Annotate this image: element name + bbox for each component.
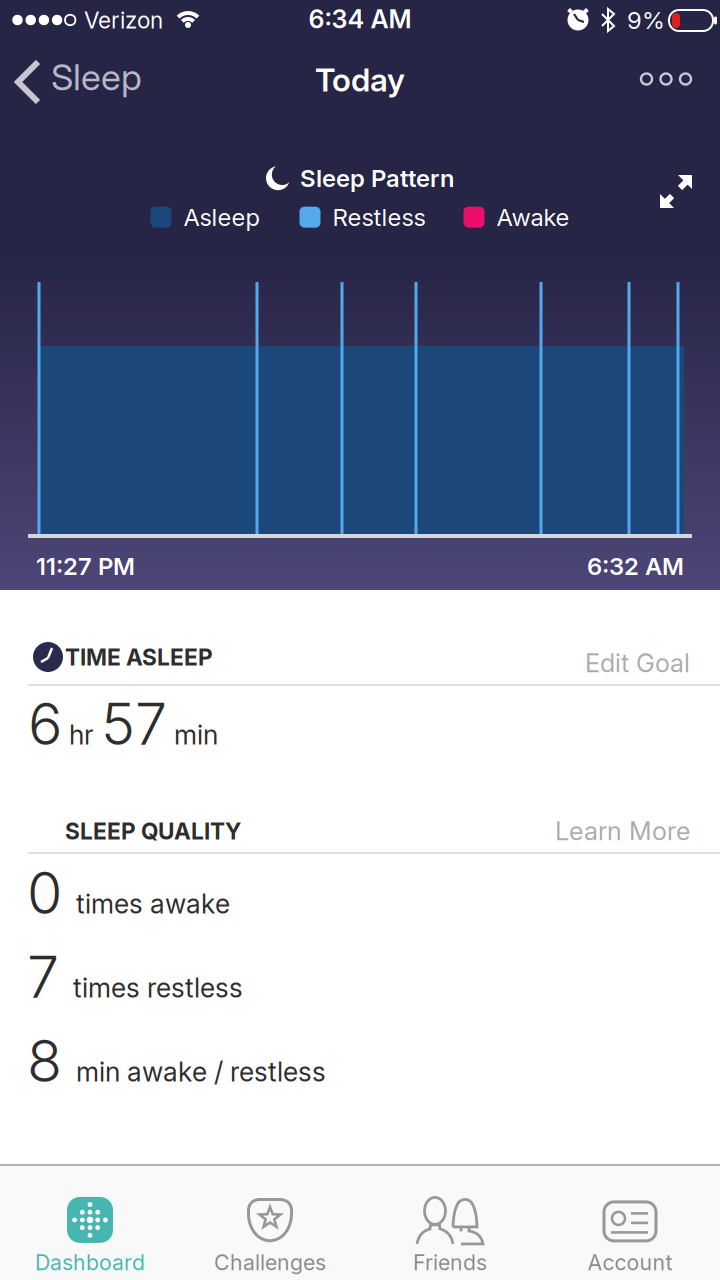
button[interactable]: Back to Sleep — [14, 46, 164, 116]
staticText: Learn More — [555, 816, 690, 846]
staticText: Challenges — [214, 1250, 326, 1275]
button[interactable]: Challenges — [180, 1192, 360, 1280]
staticText: Account — [587, 1250, 672, 1275]
staticText: 6 — [28, 690, 62, 758]
staticText: times awake — [76, 888, 230, 920]
staticText: 9% — [627, 6, 665, 34]
staticText: Sleep Pattern — [300, 164, 454, 192]
button[interactable]: Edit Goal — [0, 648, 690, 678]
staticText: 7 — [27, 943, 59, 1011]
staticText: 57 — [101, 690, 167, 758]
staticText: 8 — [27, 1027, 62, 1095]
staticText: Restless — [332, 203, 425, 231]
staticText: times restless — [73, 972, 243, 1004]
staticText: Verizon — [84, 7, 163, 34]
staticText: Today — [315, 61, 405, 99]
staticText: Asleep — [183, 203, 259, 231]
button[interactable]: More options — [631, 59, 701, 99]
staticText: Dashboard — [35, 1250, 145, 1275]
button[interactable]: Dashboard — [0, 1192, 180, 1280]
staticText: min awake / restless — [76, 1056, 326, 1088]
staticText: hr — [62, 719, 101, 751]
staticText: Awake — [496, 203, 569, 231]
staticText: 0 — [27, 859, 62, 927]
button[interactable]: Friends — [360, 1192, 540, 1280]
staticText: 11:27 PM — [36, 552, 135, 580]
button[interactable]: Account — [540, 1192, 720, 1280]
staticText: Friends — [413, 1250, 487, 1275]
button[interactable]: Expand chart — [660, 175, 706, 221]
staticText: 6:34 AM — [308, 4, 411, 34]
button[interactable]: Learn More — [0, 816, 690, 846]
staticText: 6:32 AM — [587, 552, 684, 580]
staticText: Edit Goal — [585, 648, 690, 678]
staticText: Sleep — [51, 56, 142, 98]
staticText: min — [167, 719, 218, 751]
staticText: SLEEP QUALITY — [65, 818, 241, 845]
staticText: TIME ASLEEP — [65, 644, 213, 671]
